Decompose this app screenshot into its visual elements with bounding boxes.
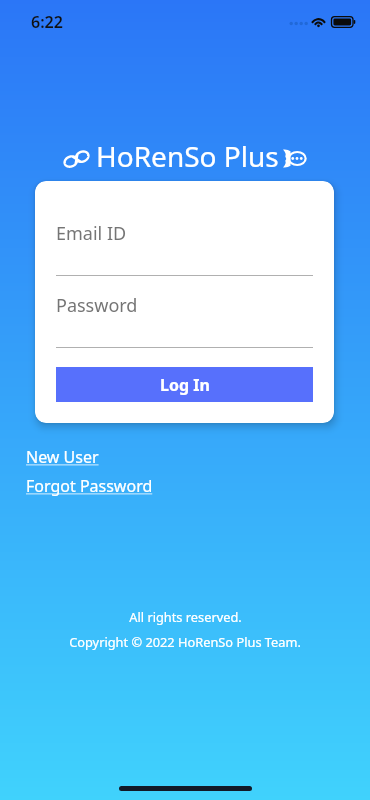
button[interactable]: Password xyxy=(56,293,313,318)
other: Chat xyxy=(282,149,307,168)
button[interactable]: New User xyxy=(26,446,99,468)
other: HoRenSo logo xyxy=(62,147,91,169)
button[interactable]: Log In xyxy=(56,367,313,402)
staticText: 6:22 xyxy=(31,11,63,33)
staticText: Password xyxy=(56,293,138,318)
staticText: Email ID xyxy=(56,221,127,246)
staticText: New User xyxy=(26,446,99,468)
button[interactable]: Email ID xyxy=(56,221,313,246)
button[interactable]: Forgot Password xyxy=(26,475,153,497)
staticText: Copyright © 2022 HoRenSo Plus Team. xyxy=(69,633,301,650)
staticText: All rights reserved. xyxy=(129,608,242,625)
staticText: HoRenSo Plus xyxy=(96,137,279,175)
staticText: Log In xyxy=(160,374,210,396)
staticText: Forgot Password xyxy=(26,475,153,497)
